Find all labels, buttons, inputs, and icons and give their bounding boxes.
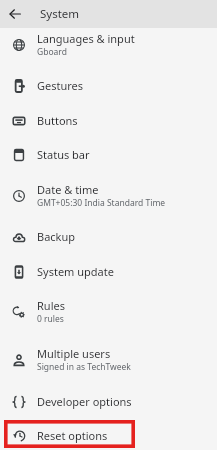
button[interactable]: Status bar (0, 137, 217, 171)
button[interactable]: Buttons (0, 103, 217, 137)
staticText: Buttons (37, 113, 78, 128)
button[interactable]: Backup (0, 219, 217, 253)
staticText: Backup (37, 229, 76, 244)
button[interactable]: Gestures (0, 68, 217, 102)
staticText: Developer options (37, 394, 132, 409)
button[interactable]: Rules (0, 289, 217, 333)
button[interactable]: Developer options (0, 384, 217, 418)
staticText: GMT+05:30 India Standard Time (37, 197, 166, 209)
staticText: Languages & input (37, 31, 135, 46)
staticText: Status bar (37, 147, 90, 162)
button[interactable]: System update (0, 254, 217, 288)
staticText: System (40, 6, 80, 22)
staticText: Multiple users (37, 346, 111, 361)
staticText: Reset options (37, 428, 108, 443)
staticText: Date & time (37, 182, 99, 197)
staticText: Signed in as TechTweek (37, 361, 131, 373)
staticText: Gboard (37, 46, 67, 58)
button[interactable]: Back (6, 5, 24, 23)
button[interactable]: Date & time (0, 173, 217, 217)
button[interactable]: Languages & input (0, 22, 217, 66)
button[interactable]: Reset options (0, 418, 217, 450)
staticText: System update (37, 264, 114, 279)
staticText: 0 rules (37, 313, 64, 325)
staticText: Rules (37, 298, 65, 313)
button[interactable]: Multiple users (0, 337, 217, 381)
staticText: Gestures (37, 78, 84, 93)
